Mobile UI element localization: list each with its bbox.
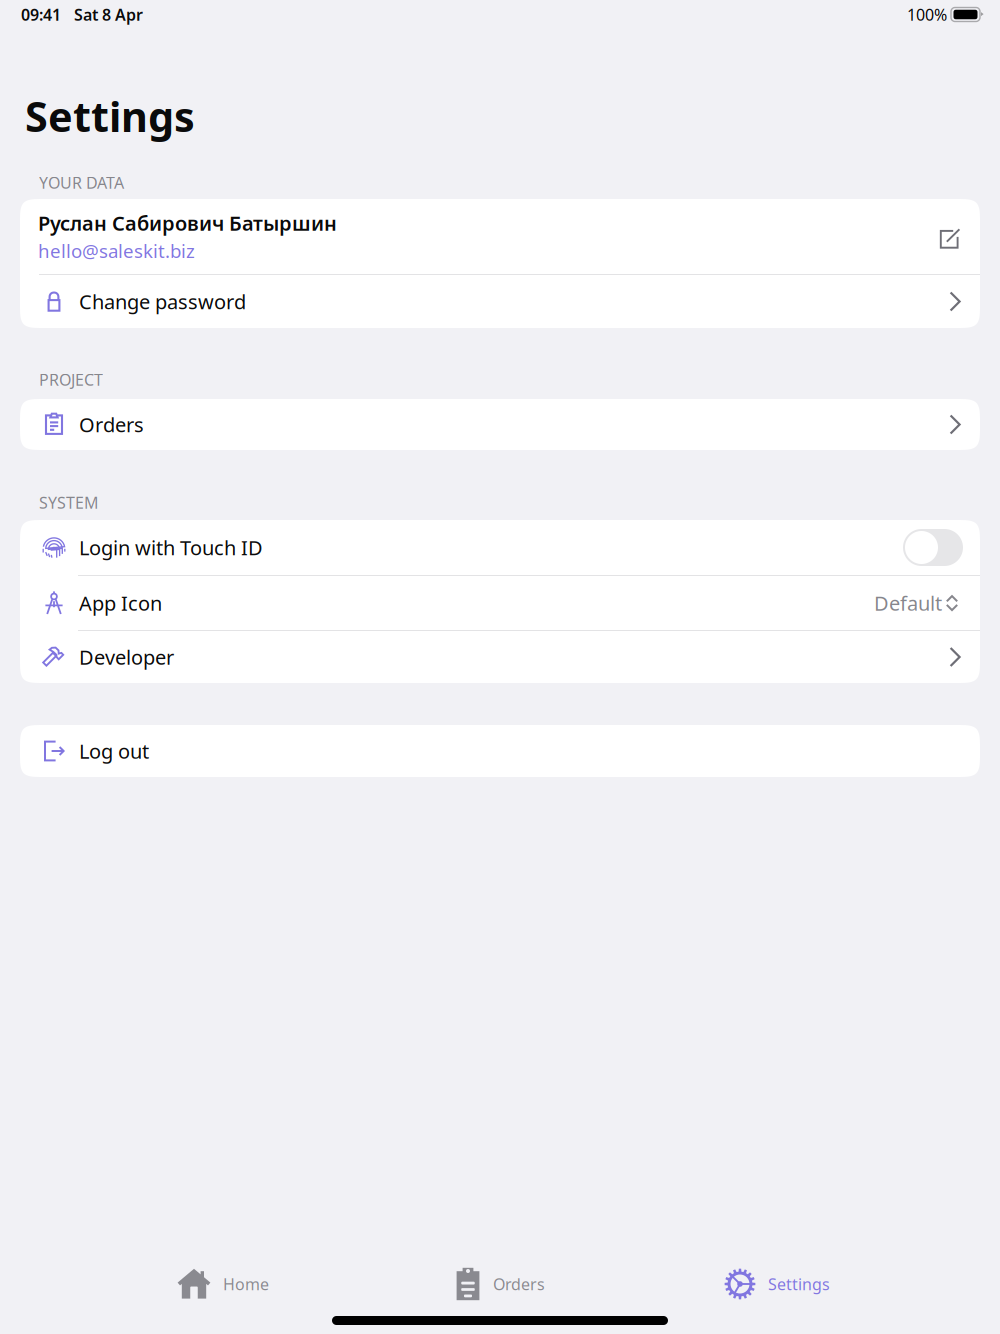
staticText: App Icon — [79, 590, 162, 616]
staticText: hello@saleskit.biz — [38, 238, 195, 263]
button[interactable]: Log out — [20, 725, 980, 777]
staticText: Login with Touch ID — [79, 534, 263, 561]
button[interactable]: App Icon — [20, 576, 980, 630]
staticText: Log out — [79, 738, 149, 764]
staticText: Developer — [79, 644, 174, 670]
button[interactable]: Orders — [409, 1263, 591, 1305]
staticText: Default — [874, 590, 942, 616]
staticText: YOUR DATA — [39, 172, 124, 193]
button[interactable]: Developer — [20, 631, 980, 683]
button[interactable]: Руслан Сабирович Батыршин — [20, 199, 980, 274]
staticText: Orders — [493, 1273, 545, 1295]
button[interactable]: Orders — [20, 399, 980, 450]
staticText: Sat 8 Apr — [74, 4, 143, 25]
staticText: SYSTEM — [39, 492, 99, 513]
button[interactable]: Home — [132, 1263, 314, 1305]
staticText: Settings — [25, 89, 195, 143]
staticText: Home — [223, 1273, 269, 1295]
staticText: Orders — [79, 411, 144, 438]
button[interactable]: Change password — [20, 275, 980, 328]
staticText: 09:41 — [21, 4, 61, 25]
staticText: 100% — [907, 4, 947, 25]
staticText: Settings — [768, 1273, 830, 1295]
button[interactable]: Settings — [686, 1263, 868, 1305]
staticText: Change password — [79, 288, 246, 315]
button[interactable]: Login with Touch ID — [20, 520, 980, 575]
staticText: PROJECT — [39, 369, 103, 390]
staticText: Руслан Сабирович Батыршин — [38, 210, 337, 236]
